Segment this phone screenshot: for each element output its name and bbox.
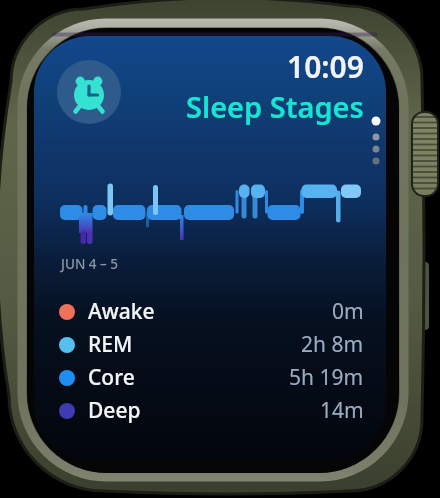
staticText: JUN 4 – 5 (61, 255, 119, 273)
button[interactable] (57, 60, 121, 124)
button[interactable]: REM (59, 328, 364, 361)
staticText: 0m (332, 297, 364, 326)
staticText: 5h 19m (289, 363, 364, 392)
staticText: 10:09 (287, 46, 364, 87)
button[interactable]: Awake (59, 295, 364, 328)
staticText: 2h 8m (301, 330, 364, 359)
button[interactable]: Deep (59, 394, 364, 427)
staticText: Sleep Stages (186, 87, 364, 126)
button[interactable]: Core (59, 361, 364, 394)
staticText: Awake (88, 297, 155, 326)
staticText: Deep (88, 396, 141, 425)
staticText: Core (88, 363, 135, 392)
staticText: REM (88, 330, 133, 359)
staticText: 14m (320, 396, 364, 425)
